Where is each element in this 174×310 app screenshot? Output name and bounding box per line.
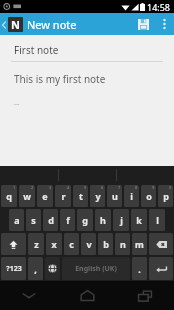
staticText: y [95,190,101,202]
staticText: b [103,238,109,250]
staticText: i [130,190,133,202]
staticText: First note [14,43,59,57]
button[interactable]: This is my first note [0,72,174,108]
button[interactable]: . [132,257,147,280]
staticText: N [11,17,20,32]
staticText: q [6,190,12,202]
staticText: j [120,214,123,226]
button[interactable]: f [60,209,75,231]
button[interactable]: i [124,185,139,207]
staticText: 7 [118,185,121,190]
button[interactable]: Shift [1,233,26,255]
staticText: t [79,190,83,202]
button[interactable]: d [43,209,58,231]
button[interactable]: ?123 [1,257,26,280]
button[interactable]: Backspace [149,233,173,255]
staticText: s [31,214,36,226]
staticText: n [120,238,126,250]
staticText: g [82,214,88,226]
staticText: v [86,238,92,250]
button[interactable]: a [9,209,24,231]
staticText: 4 [67,185,70,190]
staticText: x [51,238,57,250]
staticText: 8 [135,185,138,190]
staticText: d [48,214,54,226]
button[interactable]: g [77,209,93,231]
button[interactable]: Navigate up [0,17,77,32]
button[interactable]: s [26,209,41,231]
button[interactable]: r [55,185,71,207]
staticText: English (UK) [75,264,117,274]
staticText: 14:58 [147,1,171,13]
button[interactable]: Enter [149,257,173,280]
staticText: k [136,214,142,226]
staticText: New note [27,17,77,32]
button[interactable]: w [19,185,35,207]
staticText: r [61,190,66,202]
button[interactable]: Back [0,281,58,310]
staticText: p [163,190,169,202]
button[interactable]: English (UK) [62,257,130,280]
button[interactable]: First note [0,35,174,62]
button[interactable]: l [149,209,165,231]
button[interactable]: j [113,209,129,231]
staticText: This is my first note [14,72,106,86]
button[interactable]: Change language [45,257,60,280]
button[interactable]: Home [58,281,116,310]
button[interactable]: m [132,233,147,255]
staticText: l [156,214,159,226]
button[interactable]: z [28,233,44,255]
button[interactable]: v [81,233,96,255]
staticText: f [66,214,70,226]
staticText: a [14,214,20,226]
staticText: 1 [13,185,16,190]
button[interactable]: c [64,233,79,255]
staticText: m [135,238,144,250]
button[interactable]: Recent apps [116,281,174,310]
button[interactable]: n [115,233,130,255]
button[interactable]: p [158,185,173,207]
staticText: 0 [169,185,172,190]
button[interactable]: , [28,257,43,280]
button[interactable]: b [98,233,113,255]
button[interactable]: x [46,233,62,255]
staticText: e [42,190,48,202]
button[interactable]: y [90,185,105,207]
staticText: 6 [101,185,104,190]
staticText: 5 [84,185,87,190]
staticText: ... [14,98,20,108]
staticText: h [100,214,106,226]
staticText: z [34,238,39,250]
staticText: . [138,263,141,275]
staticText: w [23,190,31,202]
staticText: o [146,190,152,202]
button[interactable]: h [95,209,111,231]
staticText: ?123 [6,264,22,274]
button[interactable]: u [107,185,122,207]
button[interactable]: q [1,185,17,207]
button[interactable]: e [37,185,53,207]
other: Navigate up [1,20,7,30]
staticText: 9 [152,185,155,190]
staticText: 3 [49,185,52,190]
button[interactable]: k [131,209,147,231]
staticText: u [112,190,118,202]
button[interactable]: o [141,185,156,207]
staticText: 2 [31,185,34,190]
button[interactable]: More options [154,14,174,34]
staticText: c [69,238,74,250]
staticText: , [34,263,37,275]
button[interactable]: t [73,185,88,207]
button[interactable]: Save [132,13,154,35]
